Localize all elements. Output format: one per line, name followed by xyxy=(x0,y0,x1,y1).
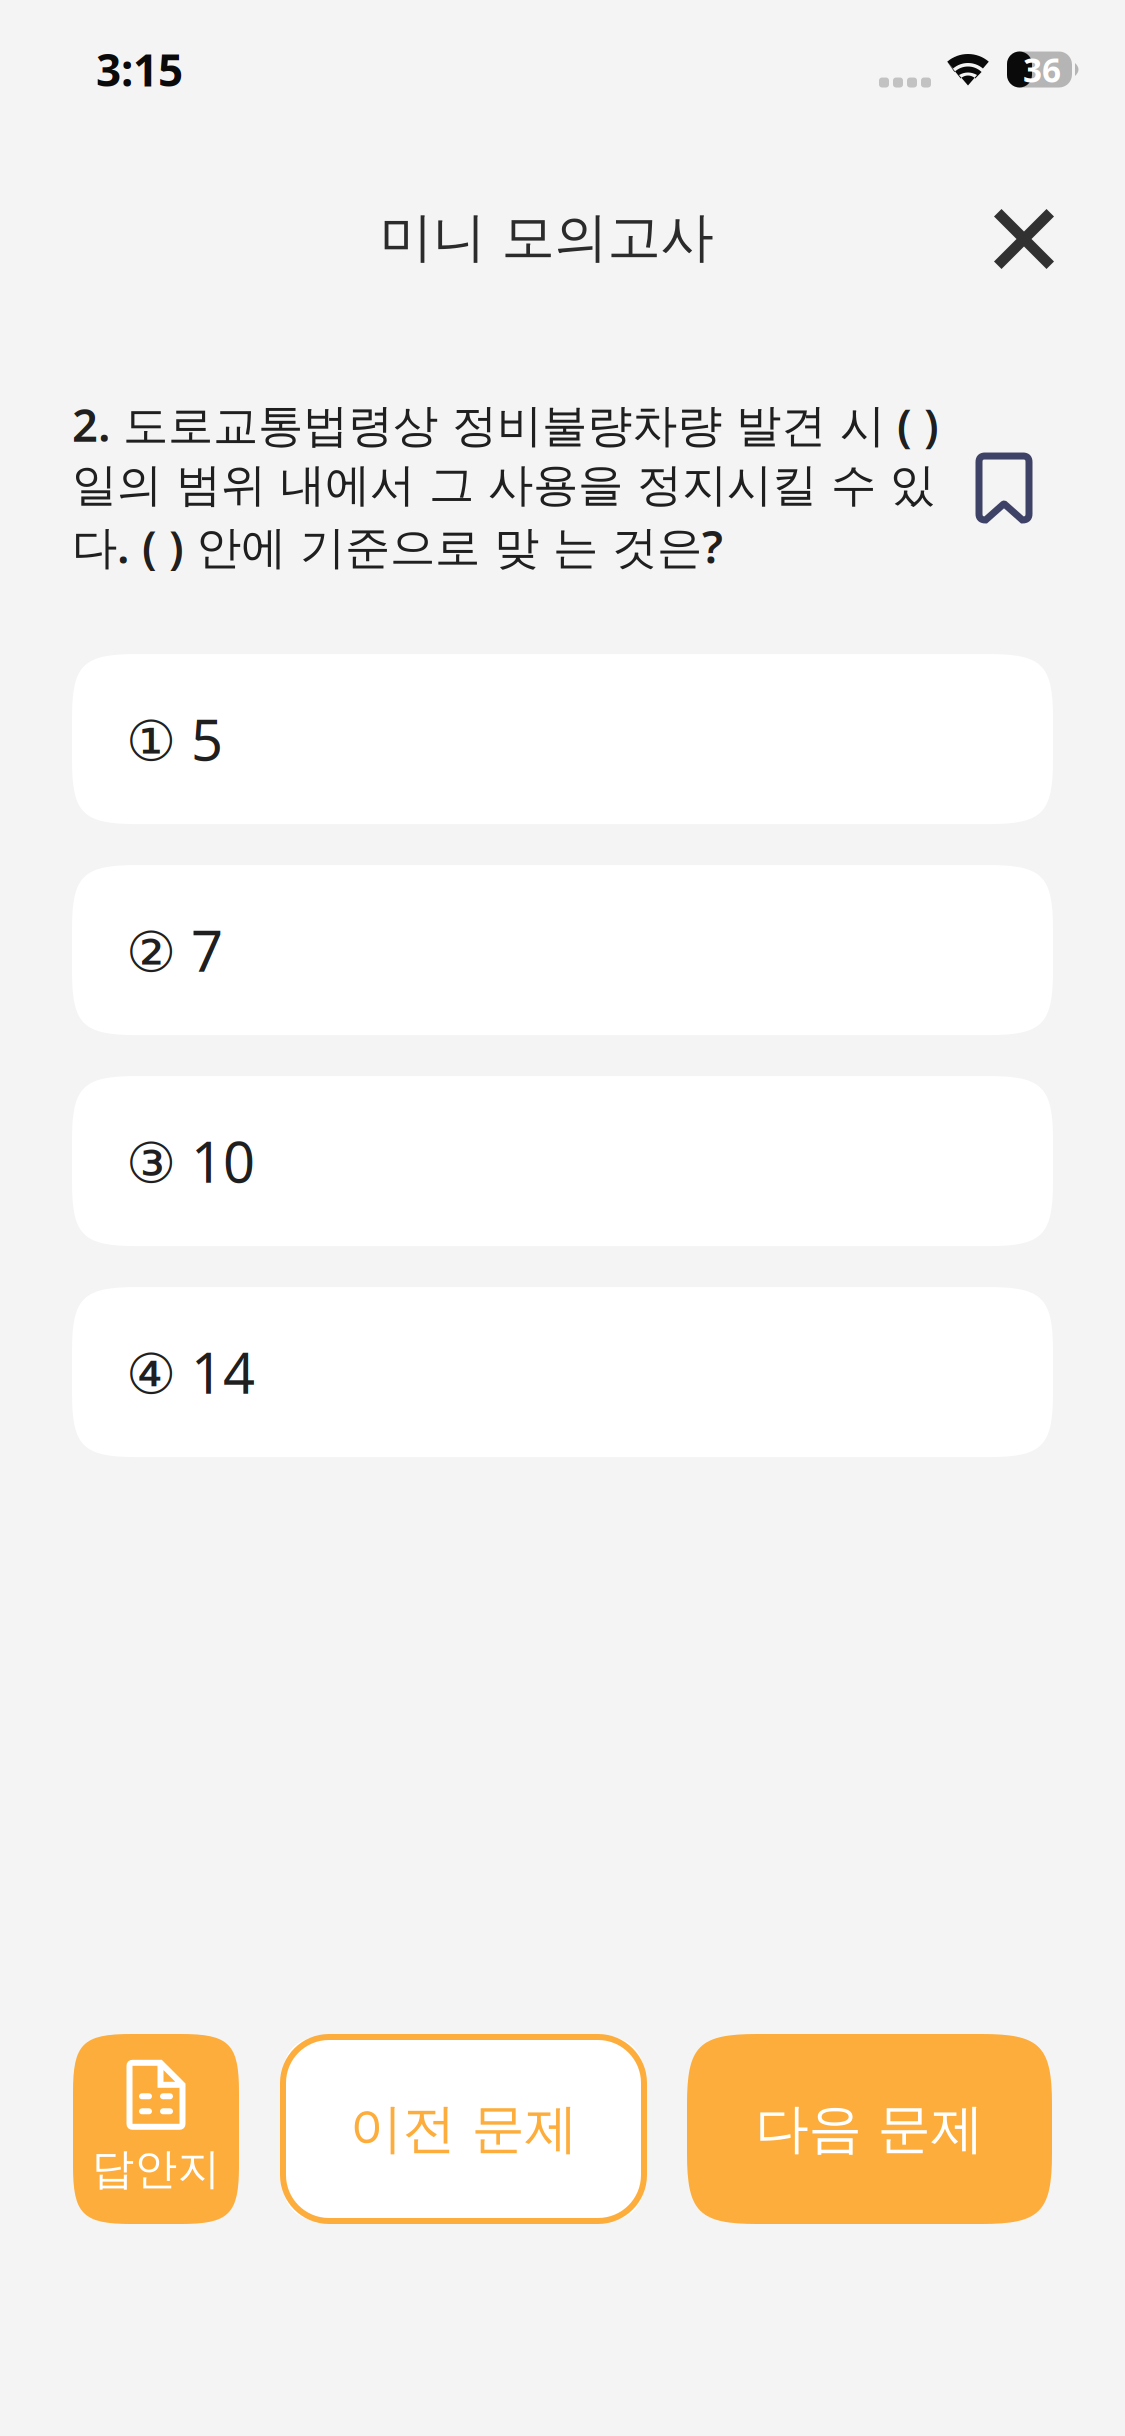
button[interactable]: ④ 14 xyxy=(72,1287,1053,1457)
staticText: 2. 도로교통법령상 정비불량차량 발견 시 ( ) xyxy=(72,394,939,454)
staticText: ① 5 xyxy=(126,702,223,776)
button[interactable]: Close xyxy=(972,184,1076,291)
button[interactable]: Bookmark xyxy=(957,394,1051,542)
button[interactable]: 이전 문제 xyxy=(280,2034,647,2224)
staticText: 미니 모의고사 xyxy=(379,205,713,270)
button[interactable]: 다음 문제 xyxy=(687,2034,1052,2224)
staticText: 다. ( ) 안에 기준으로 맞 는 것은? xyxy=(72,516,723,576)
staticText: 다음 문제 xyxy=(755,2096,983,2162)
staticText: ④ 14 xyxy=(126,1335,255,1409)
staticText: 이전 문제 xyxy=(349,2096,577,2162)
staticText: ② 7 xyxy=(126,913,223,987)
staticText: 일의 범위 내에서 그 사용을 정지시킬 수 있 xyxy=(72,457,935,513)
staticText: 36 xyxy=(1023,47,1061,92)
staticText: 3:15 xyxy=(96,40,183,99)
button[interactable]: ② 7 xyxy=(72,865,1053,1035)
staticText: 답안지 xyxy=(91,2143,220,2195)
button[interactable]: ③ 10 xyxy=(72,1076,1053,1246)
button[interactable]: ① 5 xyxy=(72,654,1053,824)
button[interactable]: 답안지 xyxy=(73,2034,239,2224)
staticText: ③ 10 xyxy=(126,1124,255,1198)
